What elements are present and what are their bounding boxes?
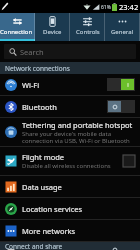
staticText: Disable all wireless connections (22, 162, 111, 170)
staticText: Tethering and portable hotspot (22, 120, 133, 130)
button[interactable]: Search (9, 44, 131, 59)
button[interactable]: On (107, 78, 135, 91)
button[interactable]: Flight mode (0, 147, 140, 175)
button[interactable]: Location services (0, 198, 140, 219)
button[interactable]: Wi-Fi (0, 74, 140, 95)
staticText: General (111, 28, 134, 36)
staticText: Search (20, 47, 44, 57)
button[interactable]: Data usage (0, 176, 140, 197)
button[interactable]: Off (107, 100, 135, 113)
staticText: 61% (101, 4, 111, 11)
staticText: Share your device's mobile data connecti… (22, 130, 135, 145)
button[interactable]: Flight mode checkbox (123, 155, 135, 167)
button[interactable]: Bluetooth (0, 96, 140, 117)
staticText: Wi-Fi (22, 80, 40, 90)
staticText: More networks (22, 226, 76, 236)
staticText: Connections (0, 28, 35, 36)
staticText: Location services (22, 204, 83, 214)
staticText: Flight mode (22, 152, 65, 162)
button[interactable]: General (105, 13, 140, 41)
button[interactable]: Controls (70, 13, 105, 41)
button[interactable]: Connections (0, 13, 35, 41)
button[interactable]: Tethering and portable hotspot (0, 118, 140, 146)
staticText: Controls (76, 28, 100, 36)
staticText: 23:42 (119, 2, 139, 12)
button[interactable]: Device (35, 13, 70, 41)
staticText: Bluetooth (22, 102, 57, 112)
staticText: Connect and share (5, 242, 63, 250)
staticText: Network connections (5, 64, 70, 73)
staticText: Data usage (22, 182, 62, 192)
staticText: Device (43, 28, 62, 36)
button[interactable]: More networks (0, 220, 140, 241)
